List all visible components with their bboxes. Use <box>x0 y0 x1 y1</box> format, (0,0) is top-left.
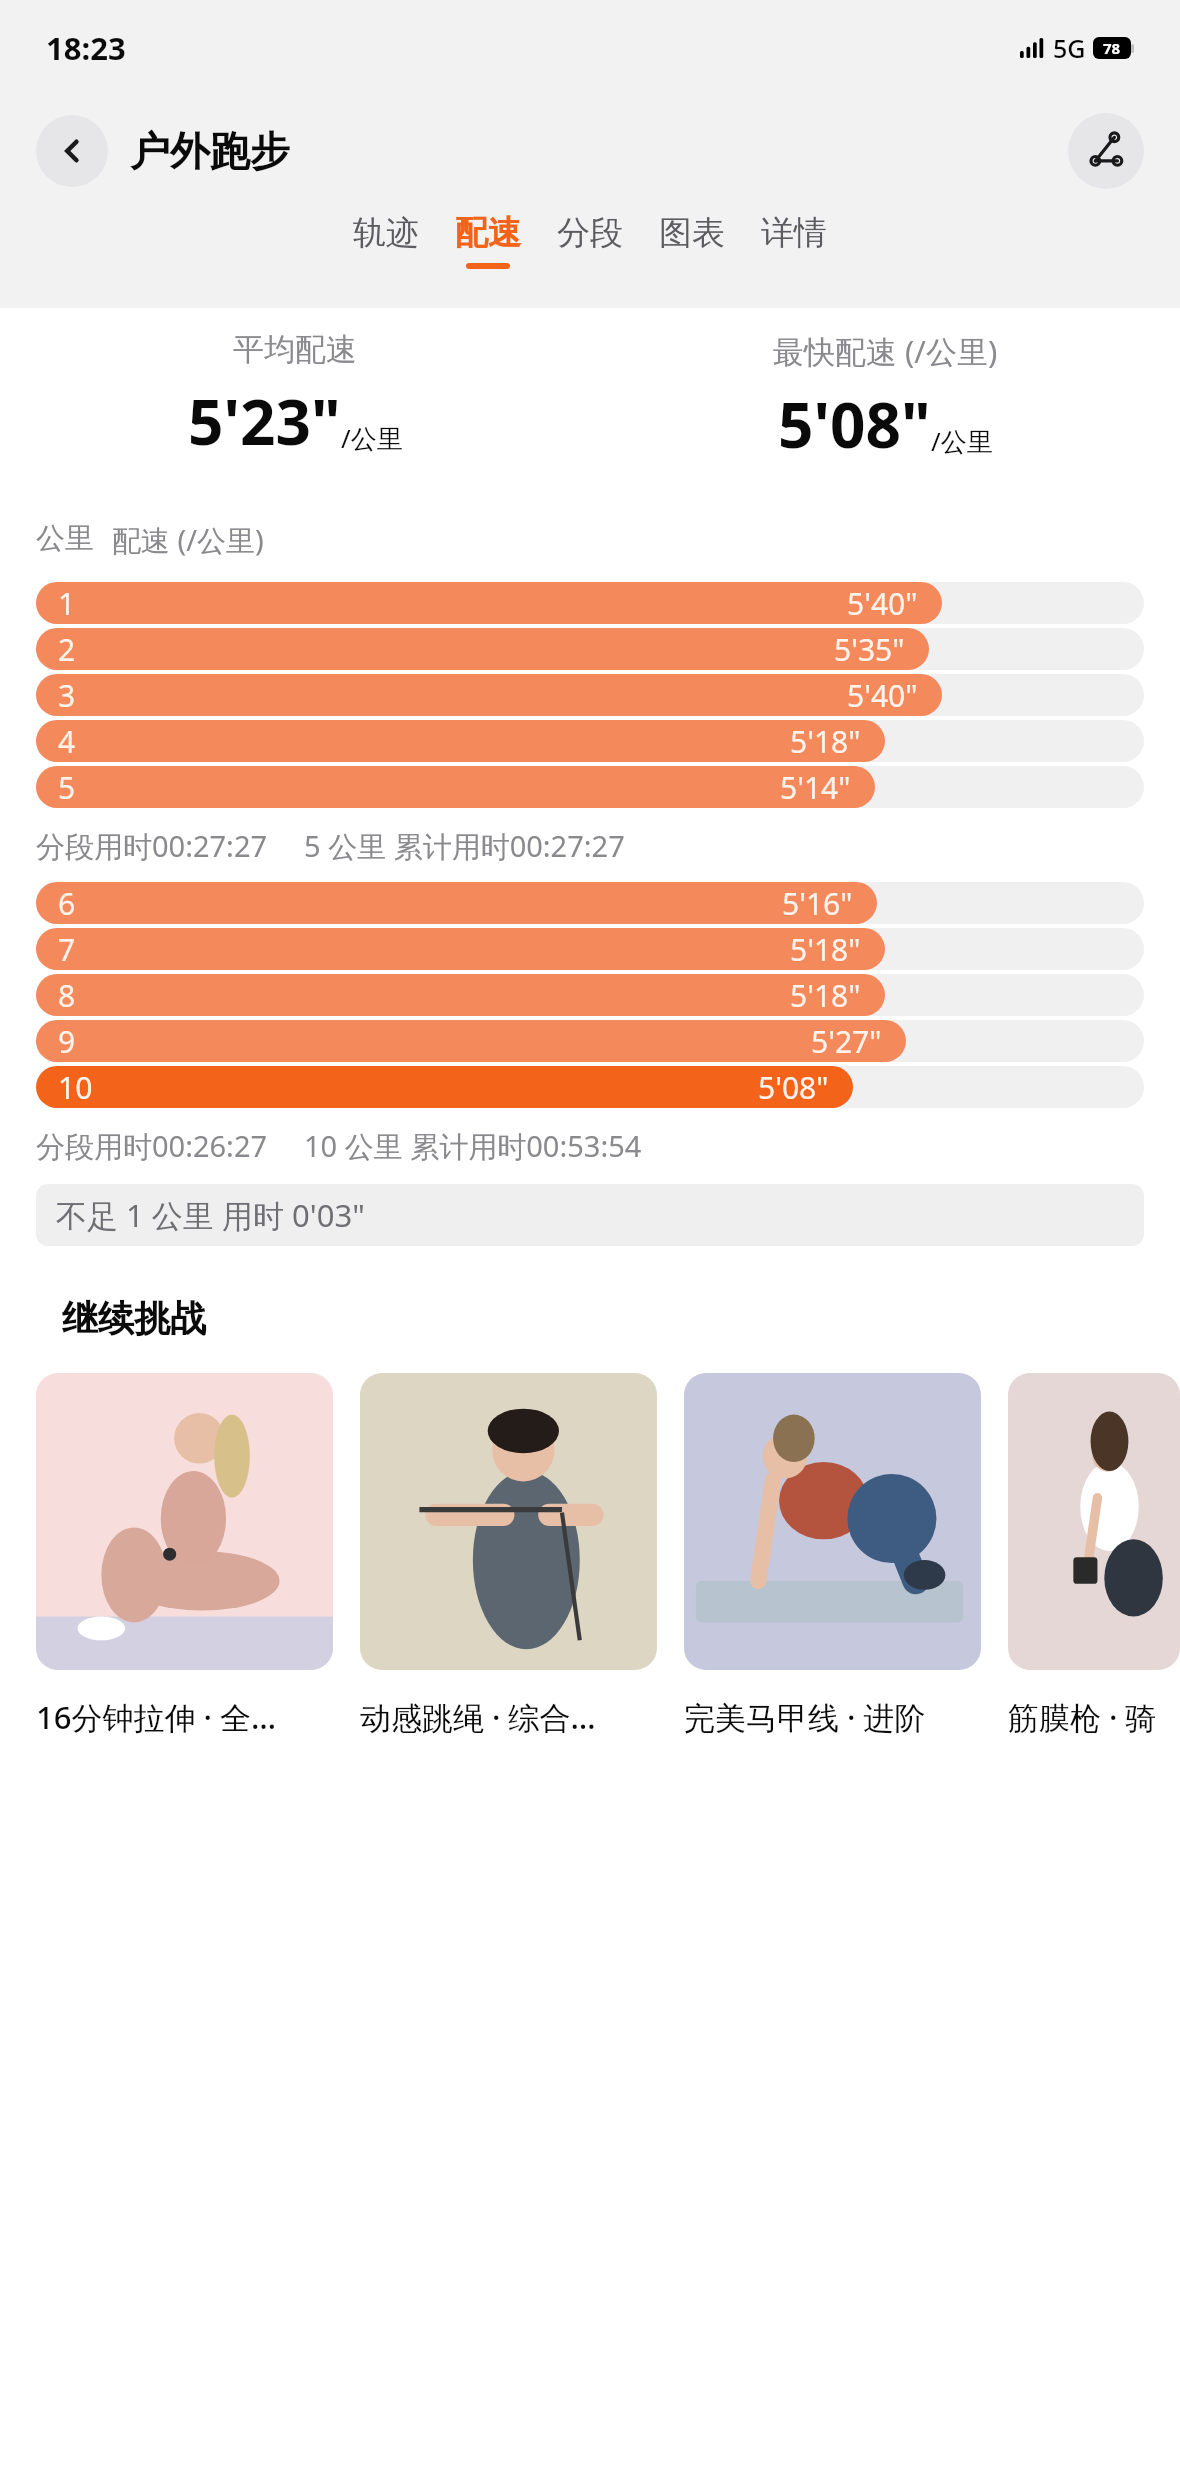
staticText: 筋膜枪 · 骑 <box>1008 1696 1157 1738</box>
button[interactable]: 4 <box>36 720 1144 764</box>
staticText: 公里 <box>36 520 94 557</box>
button[interactable]: 不足 1 公里 用时 0'03" <box>36 1184 1144 1246</box>
staticText: 分段用时00:27:27 <box>36 826 268 866</box>
staticText: 18:23 <box>46 27 126 69</box>
button[interactable]: 1 <box>36 582 1144 626</box>
button[interactable]: 详情 <box>761 206 827 269</box>
staticText: 图表 <box>659 212 725 254</box>
button[interactable]: 9 <box>36 1020 1144 1064</box>
button[interactable]: 动感跳绳 · 综合… <box>360 1373 657 1738</box>
staticText: 户外跑步 <box>130 126 290 176</box>
staticText: 配速 <box>455 212 521 254</box>
staticText: 5'40" <box>847 583 918 624</box>
staticText: 动感跳绳 · 综合… <box>360 1696 596 1738</box>
staticText: 5'18" <box>790 929 861 970</box>
button[interactable]: 配速 <box>455 206 521 269</box>
staticText: /公里 <box>341 420 403 456</box>
button[interactable]: 筋膜枪 · 骑 <box>1008 1373 1180 1738</box>
staticText: 5'08" <box>778 382 931 466</box>
staticText: 5'40" <box>847 675 918 716</box>
staticText: 完美马甲线 · 进阶 <box>684 1696 926 1738</box>
staticText: 5'27" <box>811 1021 882 1062</box>
button[interactable]: 10 <box>36 1066 1144 1110</box>
button[interactable]: 8 <box>36 974 1144 1018</box>
button[interactable]: 3 <box>36 674 1144 718</box>
staticText: 4 <box>58 721 76 762</box>
staticText: 5'08" <box>758 1067 829 1108</box>
staticText: 10 公里 累计用时00:53:54 <box>304 1126 642 1166</box>
button[interactable]: 完美马甲线 · 进阶 <box>684 1373 981 1738</box>
staticText: 5'18" <box>790 721 861 762</box>
staticText: 3 <box>58 675 76 716</box>
staticText: 不足 1 公里 用时 0'03" <box>56 1194 365 1236</box>
staticText: 78 <box>1103 38 1121 58</box>
staticText: 分段 <box>557 212 623 254</box>
staticText: 5'14" <box>780 767 851 808</box>
staticText: 5'35" <box>834 629 905 670</box>
staticText: 5G <box>1053 31 1086 65</box>
staticText: 5'16" <box>782 883 853 924</box>
staticText: 8 <box>58 975 76 1016</box>
button[interactable]: Share <box>1068 113 1144 189</box>
staticText: 5 <box>58 767 76 808</box>
button[interactable]: 2 <box>36 628 1144 672</box>
staticText: 5'18" <box>790 975 861 1016</box>
staticText: 10 <box>58 1067 93 1108</box>
button[interactable]: 5 <box>36 766 1144 810</box>
staticText: 1 <box>58 583 76 624</box>
button[interactable]: 分段用时00:26:27 <box>36 1126 1180 1166</box>
button[interactable]: Back <box>36 115 108 187</box>
staticText: 继续挑战 <box>62 1296 206 1341</box>
button[interactable]: 图表 <box>659 206 725 269</box>
staticText: 16分钟拉伸 · 全… <box>36 1696 277 1738</box>
staticText: 6 <box>58 883 76 924</box>
staticText: 最快配速 (/公里) <box>773 330 998 372</box>
button[interactable]: 分段用时00:27:27 <box>36 826 1180 866</box>
staticText: 配速 (/公里) <box>112 520 264 560</box>
button[interactable]: 分段 <box>557 206 623 269</box>
staticText: /公里 <box>931 423 993 459</box>
button[interactable]: 6 <box>36 882 1144 926</box>
staticText: 5'23" <box>188 379 341 463</box>
staticText: 2 <box>58 629 76 670</box>
button[interactable]: 轨迹 <box>353 206 419 269</box>
staticText: 详情 <box>761 212 827 254</box>
button[interactable]: 16分钟拉伸 · 全… <box>36 1373 333 1738</box>
staticText: 轨迹 <box>353 212 419 254</box>
staticText: 平均配速 <box>233 330 357 369</box>
button[interactable]: 7 <box>36 928 1144 972</box>
staticText: 5 公里 累计用时00:27:27 <box>304 826 625 866</box>
staticText: 分段用时00:26:27 <box>36 1126 268 1166</box>
staticText: 7 <box>58 929 76 970</box>
staticText: 9 <box>58 1021 76 1062</box>
